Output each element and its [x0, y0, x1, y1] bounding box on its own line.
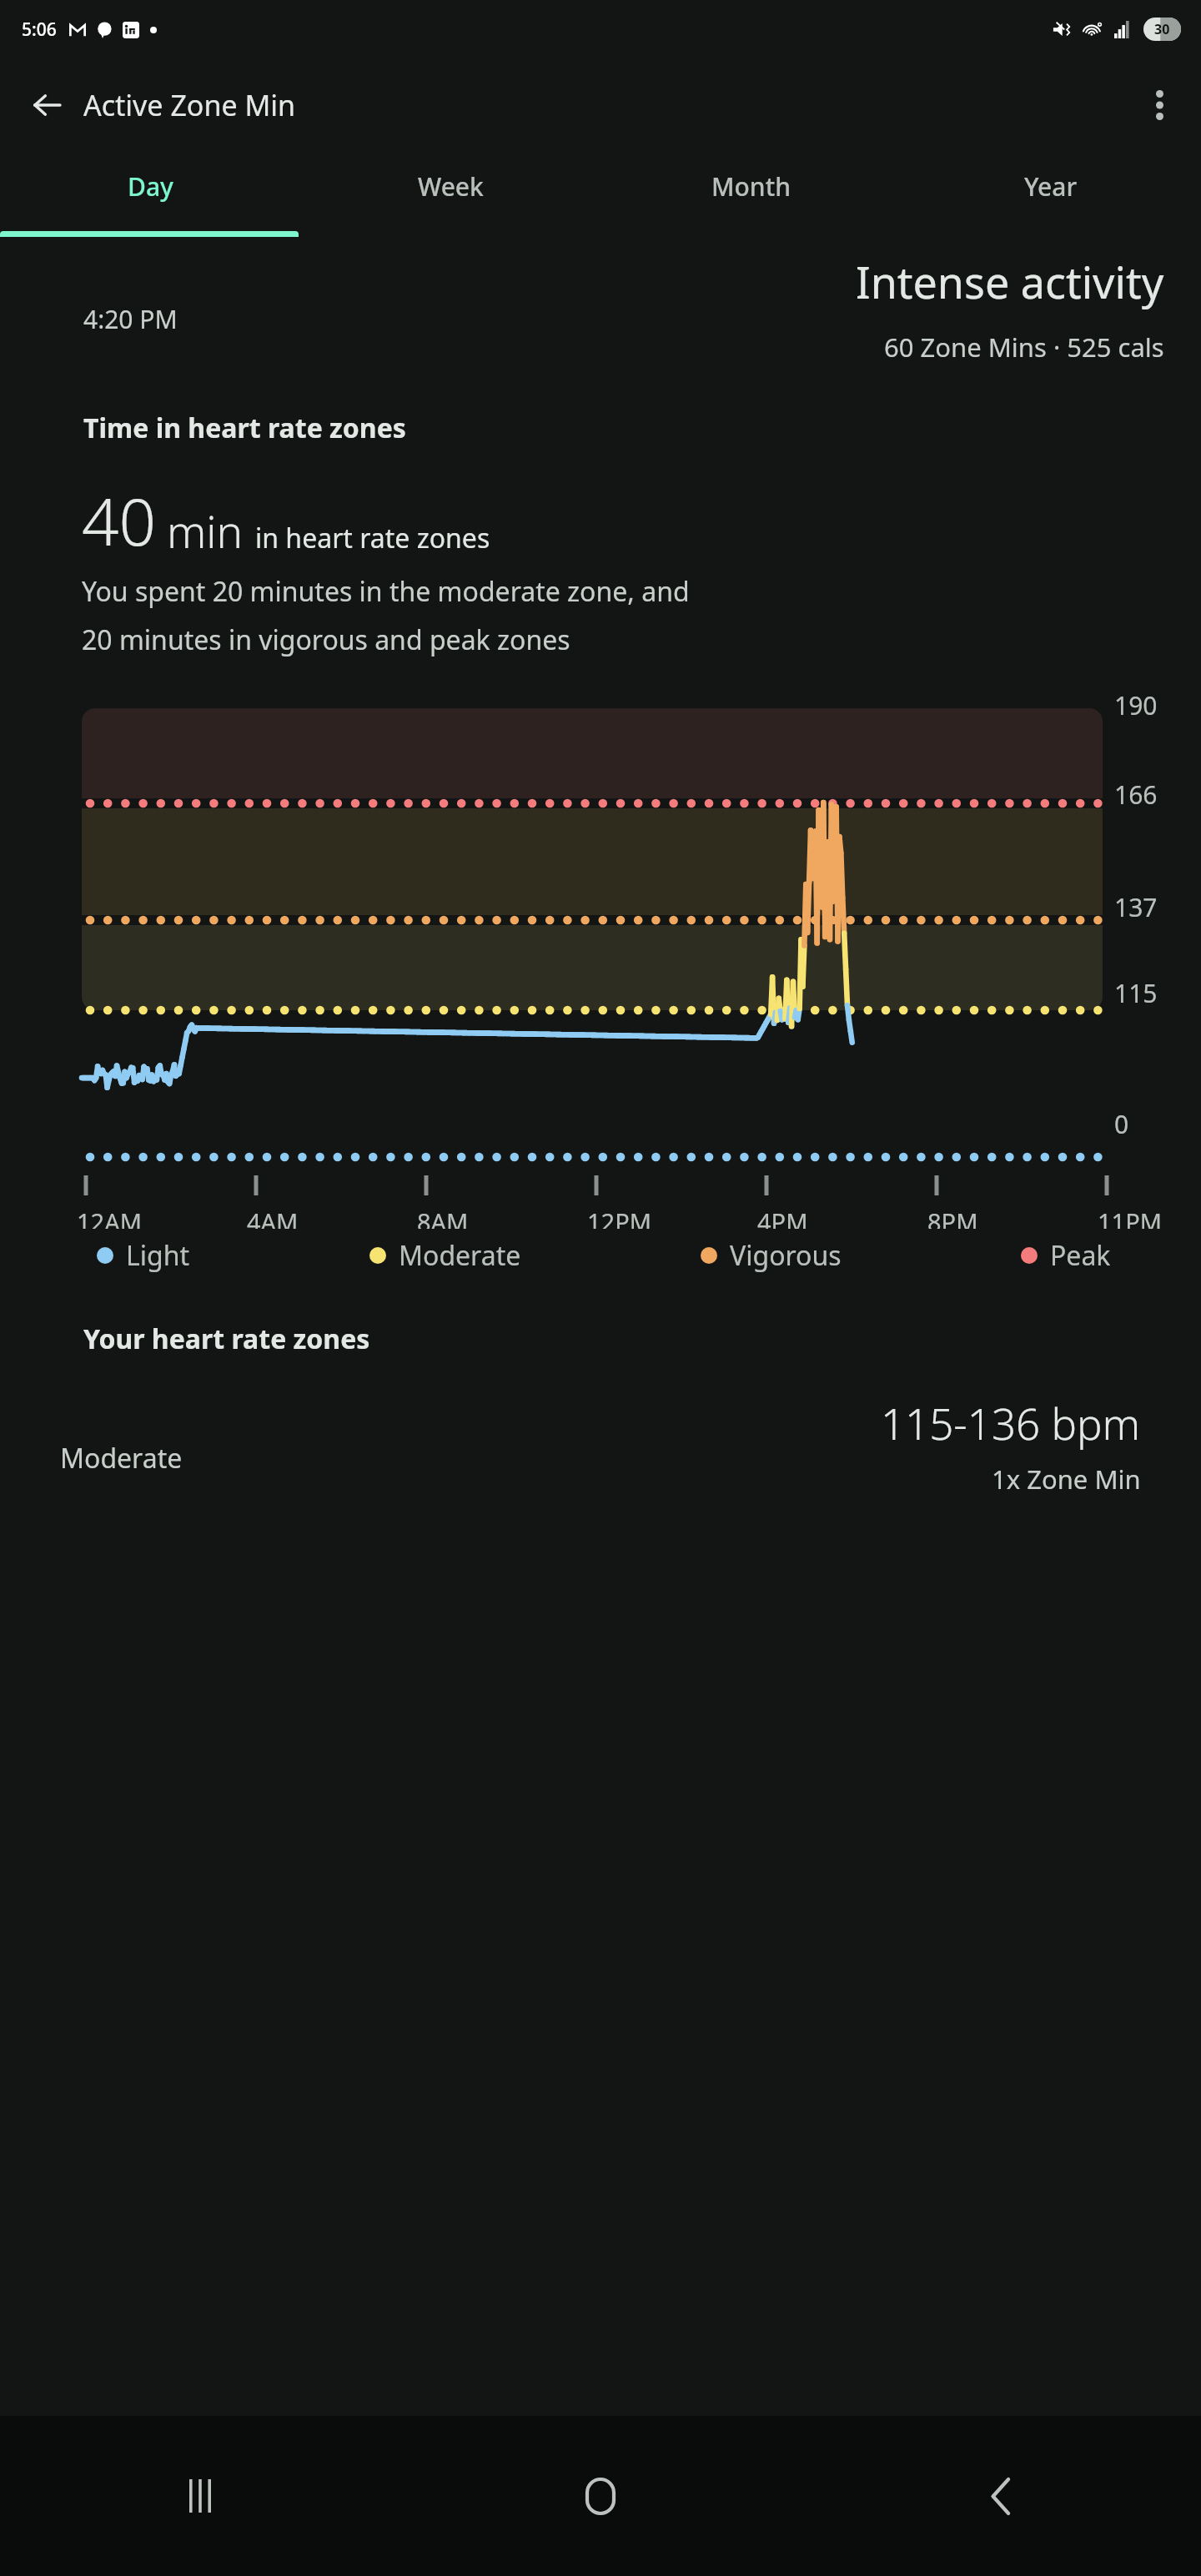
- button[interactable]: Moderate: [369, 1237, 521, 1274]
- staticText: Time in heart rate zones: [83, 410, 406, 446]
- button[interactable]: Day: [0, 152, 300, 237]
- staticText: Peak: [1050, 1237, 1111, 1274]
- button[interactable]: Vigorous: [701, 1237, 842, 1274]
- staticText: 20 minutes in vigorous and peak zones: [82, 621, 570, 658]
- staticText: 60 Zone Mins · 525 cals: [884, 330, 1164, 365]
- staticText: Week: [418, 169, 484, 204]
- staticText: in heart rate zones: [255, 520, 490, 556]
- staticText: Vigorous: [730, 1237, 842, 1274]
- staticText: 115-136 bpm: [881, 1394, 1141, 1452]
- button[interactable]: Moderate: [60, 1394, 1141, 1497]
- staticText: Month: [711, 169, 791, 204]
- staticText: 8AM: [417, 1205, 469, 1229]
- staticText: Day: [128, 169, 173, 204]
- staticText: Moderate: [399, 1237, 521, 1274]
- staticText: Active Zone Min: [83, 86, 296, 124]
- button[interactable]: Back: [801, 2416, 1201, 2576]
- button[interactable]: Month: [600, 152, 901, 237]
- staticText: 12PM: [587, 1205, 652, 1229]
- button[interactable]: Light: [97, 1237, 190, 1274]
- staticText: 4:20 PM: [83, 302, 178, 336]
- button[interactable]: Year: [901, 152, 1201, 237]
- staticText: min: [167, 501, 244, 561]
- staticText: Year: [1024, 169, 1078, 204]
- staticText: 4AM: [247, 1205, 299, 1229]
- staticText: 5:06: [22, 18, 57, 42]
- button[interactable]: Recents: [0, 2416, 400, 2576]
- button[interactable]: Week: [300, 152, 600, 237]
- staticText: Intense activity: [856, 252, 1164, 311]
- staticText: 115: [1114, 976, 1158, 1010]
- staticText: 4PM: [757, 1205, 808, 1229]
- staticText: You spent 20 minutes in the moderate zon…: [82, 573, 690, 610]
- staticText: Your heart rate zones: [83, 1321, 370, 1357]
- button[interactable]: Back: [20, 78, 73, 132]
- staticText: 0: [1114, 1107, 1129, 1141]
- staticText: 11PM: [1098, 1205, 1163, 1229]
- staticText: 12AM: [77, 1205, 143, 1229]
- button[interactable]: More options: [1133, 78, 1186, 132]
- staticText: 40: [82, 476, 157, 565]
- staticText: 166: [1114, 777, 1158, 812]
- staticText: 1x Zone Min: [992, 1462, 1141, 1497]
- button[interactable]: Home: [400, 2416, 801, 2576]
- staticText: 137: [1114, 890, 1158, 924]
- staticText: 190: [1114, 688, 1158, 722]
- staticText: Moderate: [60, 1440, 183, 1477]
- staticText: 30: [1154, 20, 1170, 38]
- button[interactable]: Peak: [1021, 1237, 1111, 1274]
- staticText: Light: [126, 1237, 190, 1274]
- staticText: 8PM: [927, 1205, 978, 1229]
